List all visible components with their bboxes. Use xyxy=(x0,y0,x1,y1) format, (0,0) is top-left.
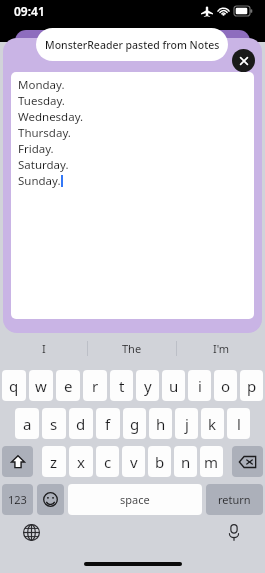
staticText: p xyxy=(247,376,257,396)
staticText: f xyxy=(105,414,111,434)
staticText: u xyxy=(169,376,179,396)
staticText: a xyxy=(23,414,32,434)
button[interactable]: b xyxy=(148,446,171,477)
button[interactable]: return xyxy=(206,484,263,515)
staticText: c xyxy=(104,452,112,472)
button[interactable]: a xyxy=(15,408,39,439)
button[interactable]: m xyxy=(200,446,223,477)
staticText: Thursday. xyxy=(18,125,71,141)
button[interactable]: f xyxy=(96,408,120,439)
button[interactable]: space xyxy=(68,484,202,515)
button[interactable]: e xyxy=(56,370,80,401)
button[interactable]: g xyxy=(123,408,146,439)
button[interactable]: The xyxy=(88,333,176,364)
button[interactable]: 123 xyxy=(2,484,33,515)
button[interactable]: h xyxy=(149,408,172,439)
staticText: Saturday. xyxy=(18,157,69,173)
staticText: Tuesday. xyxy=(18,93,65,109)
staticText: x xyxy=(77,452,85,472)
button[interactable]: Emoji xyxy=(37,484,64,515)
button[interactable]: q xyxy=(2,370,26,401)
staticText: Wednesday. xyxy=(18,109,84,125)
staticText: 09:41 xyxy=(14,3,45,19)
staticText: w xyxy=(35,376,47,396)
staticText: i xyxy=(198,376,202,396)
button[interactable]: Backspace xyxy=(232,446,263,477)
button[interactable]: MonsterReader pasted from Notes xyxy=(36,28,228,61)
staticText: Sunday. xyxy=(18,173,61,189)
button[interactable]: I xyxy=(0,333,87,364)
button[interactable]: r xyxy=(83,370,107,401)
button[interactable]: t xyxy=(110,370,133,401)
staticText: g xyxy=(130,414,140,434)
staticText: j xyxy=(185,414,189,434)
staticText: m xyxy=(204,452,219,472)
staticText: v xyxy=(130,452,138,472)
staticText: z xyxy=(50,452,58,472)
button[interactable]: u xyxy=(162,370,185,401)
staticText: o xyxy=(221,376,231,396)
button[interactable]: Shift xyxy=(2,446,33,477)
staticText: The xyxy=(122,341,142,356)
button[interactable]: j xyxy=(175,408,198,439)
button[interactable]: p xyxy=(240,370,263,401)
staticText: y xyxy=(144,376,152,396)
staticText: Friday. xyxy=(18,141,54,157)
staticText: h xyxy=(156,414,166,434)
button[interactable]: o xyxy=(214,370,237,401)
staticText: MonsterReader pasted from Notes xyxy=(45,38,220,52)
staticText: I xyxy=(42,341,46,356)
button[interactable]: n xyxy=(174,446,197,477)
staticText: k xyxy=(208,414,217,434)
button[interactable]: y xyxy=(136,370,159,401)
button[interactable]: d xyxy=(69,408,93,439)
staticText: r xyxy=(92,376,99,396)
staticText: 123 xyxy=(8,492,27,507)
staticText: n xyxy=(181,452,191,472)
staticText: l xyxy=(237,414,241,434)
button[interactable]: w xyxy=(29,370,53,401)
staticText: d xyxy=(76,414,86,434)
staticText: return xyxy=(218,492,251,507)
staticText: s xyxy=(50,414,58,434)
staticText: e xyxy=(64,376,73,396)
staticText: t xyxy=(119,376,125,396)
staticText: q xyxy=(9,376,19,396)
button[interactable]: c xyxy=(96,446,119,477)
button[interactable]: x xyxy=(69,446,93,477)
button[interactable]: s xyxy=(42,408,66,439)
staticText: I'm xyxy=(213,341,230,356)
button[interactable]: Switch keyboard xyxy=(20,521,42,543)
button[interactable]: v xyxy=(122,446,145,477)
button[interactable]: Monday. xyxy=(11,72,254,319)
staticText: space xyxy=(120,492,150,507)
button[interactable]: Close xyxy=(232,49,255,72)
button[interactable]: I'm xyxy=(177,333,265,364)
button[interactable]: z xyxy=(42,446,66,477)
staticText: Monday. xyxy=(18,77,65,93)
button[interactable]: i xyxy=(188,370,211,401)
button[interactable]: l xyxy=(227,408,250,439)
staticText: b xyxy=(155,452,165,472)
button[interactable]: k xyxy=(201,408,224,439)
button[interactable]: Dictation xyxy=(223,521,245,543)
